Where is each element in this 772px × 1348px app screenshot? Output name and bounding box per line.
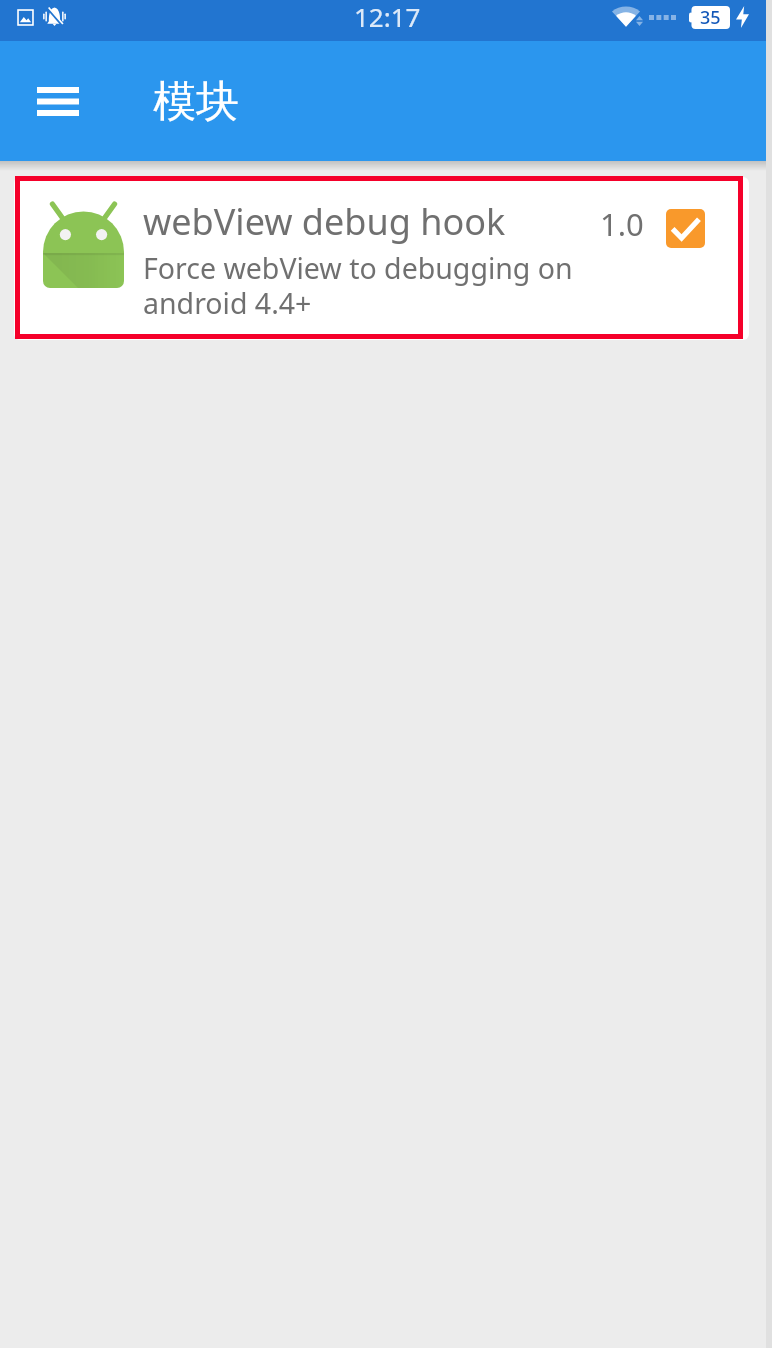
staticText: webView debug hook (143, 197, 506, 246)
staticText: 12:17 (354, 0, 421, 34)
staticText: 35 (700, 5, 721, 28)
staticText: 模块 (153, 75, 239, 129)
button[interactable]: Module enabled (666, 209, 705, 248)
staticText: 1.0 (600, 203, 644, 245)
staticText: Force webView to debugging on android 4.… (143, 249, 573, 323)
button[interactable]: Open navigation drawer (24, 70, 92, 132)
button[interactable]: webView debug hook (14, 177, 749, 340)
